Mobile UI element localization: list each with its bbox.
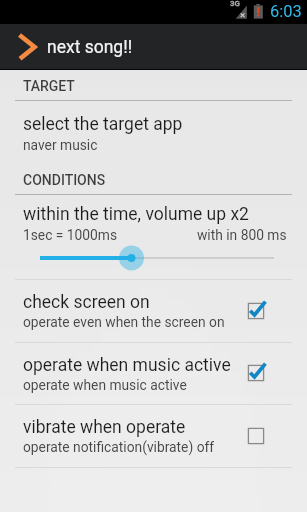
button[interactable]: Checked <box>243 298 269 324</box>
staticText: operate notification(vibrate) off <box>23 439 215 455</box>
staticText: operate when music active <box>23 377 187 393</box>
staticText: within the time, volume up x2 <box>23 204 249 225</box>
staticText: next song!! <box>47 37 133 58</box>
staticText: with in 800 ms <box>197 227 287 243</box>
button[interactable]: App icon <box>0 24 307 69</box>
staticText: 6:03 <box>270 2 302 21</box>
staticText: TARGET <box>23 78 75 94</box>
staticText: 3G <box>230 0 240 8</box>
staticText: CONDITIONS <box>23 172 106 188</box>
staticText: select the target app <box>23 114 183 135</box>
button[interactable]: within the time, volume up x2 <box>0 195 307 280</box>
button[interactable]: Checked <box>243 360 269 386</box>
staticText: vibrate when operate <box>23 417 186 438</box>
button[interactable]: select the target app <box>0 101 307 153</box>
button[interactable]: Unchecked <box>243 423 269 449</box>
other: App icon <box>15 31 39 61</box>
button[interactable]: operate when music active <box>0 343 307 405</box>
button[interactable]: vibrate when operate <box>0 405 307 468</box>
staticText: naver music <box>23 137 98 153</box>
staticText: 1sec = 1000ms <box>23 227 118 243</box>
button[interactable]: check screen on <box>0 280 307 343</box>
staticText: operate when music active <box>23 355 231 376</box>
staticText: check screen on <box>23 292 150 313</box>
staticText: operate even when the screen on <box>23 314 225 330</box>
